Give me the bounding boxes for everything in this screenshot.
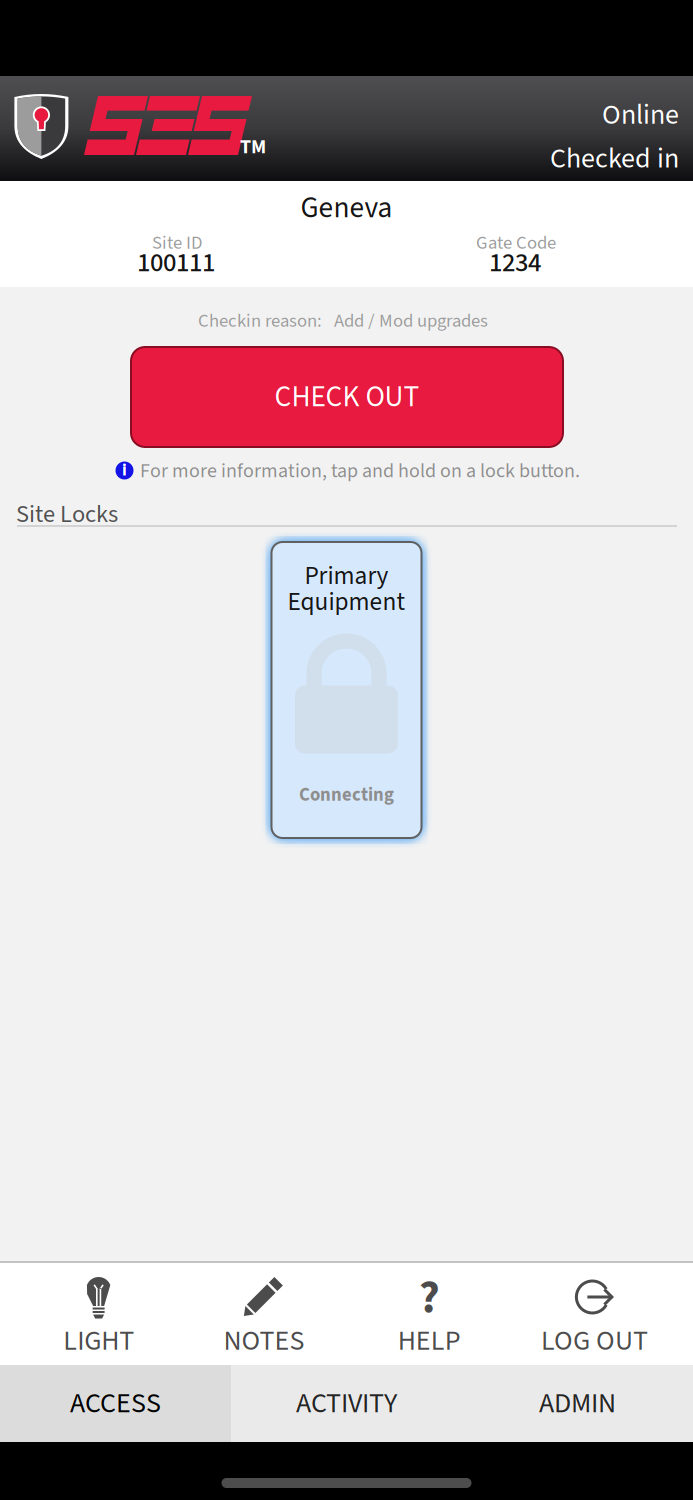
button[interactable]: ACTIVITY: [231, 1365, 462, 1442]
staticText: ACCESS: [70, 1384, 161, 1423]
staticText: HELP: [398, 1321, 461, 1361]
staticText: i: [122, 458, 127, 482]
staticText: Site Locks: [16, 497, 118, 532]
staticText: NOTES: [223, 1321, 304, 1361]
button[interactable]: Log out: [512, 1275, 677, 1351]
staticText: LOG OUT: [541, 1321, 648, 1361]
staticText: CHECK OUT: [274, 376, 419, 418]
staticText: Geneva: [300, 187, 392, 229]
button[interactable]: ACCESS: [0, 1365, 231, 1442]
button[interactable]: CHECK OUT: [131, 347, 563, 447]
staticText: Checkin reason: Add / Mod upgrades: [198, 308, 488, 334]
staticText: Checked in: [550, 139, 679, 179]
staticText: 1234: [489, 244, 541, 282]
staticText: ACTIVITY: [296, 1384, 397, 1423]
staticText: 100111: [137, 244, 215, 282]
staticText: For more information, tap and hold on a …: [140, 457, 580, 485]
button[interactable]: ADMIN: [462, 1365, 693, 1442]
staticText: Connecting: [299, 782, 394, 808]
button[interactable]: Notes: [181, 1275, 346, 1351]
staticText: Primary: [304, 558, 388, 594]
button[interactable]: Primary: [261, 532, 431, 848]
staticText: Equipment: [287, 584, 405, 620]
button[interactable]: Light: [16, 1275, 181, 1351]
staticText: Online: [602, 95, 679, 135]
button[interactable]: Help: [346, 1275, 512, 1351]
staticText: LIGHT: [63, 1321, 134, 1361]
staticText: ADMIN: [539, 1384, 616, 1423]
staticText: Site ID: [152, 230, 202, 256]
staticText: ?: [419, 1266, 440, 1330]
staticText: TM: [240, 133, 266, 161]
staticText: Gate Code: [476, 230, 556, 256]
